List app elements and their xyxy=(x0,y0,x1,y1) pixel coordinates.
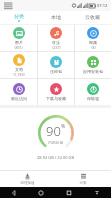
staticText: 07:12 xyxy=(97,3,108,8)
staticText: (8) xyxy=(91,45,96,50)
staticText: 分类 xyxy=(14,13,24,19)
button[interactable]: Hide keyboard xyxy=(83,187,111,198)
staticText: (891) xyxy=(14,45,23,50)
button[interactable]: 文档 xyxy=(0,52,37,78)
staticText: 下载与收藏 xyxy=(46,96,66,101)
staticText: 文档 xyxy=(15,67,23,72)
button[interactable]: Home xyxy=(27,187,55,198)
staticText: 内部存储 xyxy=(48,140,64,145)
button[interactable]: 保险箱 xyxy=(75,79,111,105)
button[interactable]: 分类 xyxy=(55,171,111,187)
staticText: 28.92 GB / 32.00 GB xyxy=(37,155,75,160)
button[interactable]: 最近访问 xyxy=(0,79,37,105)
staticText: 压缩包 xyxy=(50,69,62,74)
button[interactable]: 本地 xyxy=(37,11,74,24)
staticText: 清理加速 xyxy=(20,181,35,186)
staticText: 云收藏 xyxy=(85,14,100,20)
staticText: 图片 xyxy=(15,40,23,45)
button[interactable]: Recents xyxy=(55,187,83,198)
button[interactable]: 下载与收藏 xyxy=(38,79,74,105)
button[interactable]: Back xyxy=(0,187,27,198)
button[interactable]: 清理加速 xyxy=(0,171,55,187)
staticText: (1,749) xyxy=(13,72,25,77)
button[interactable]: 云收藏 xyxy=(74,11,111,24)
button[interactable]: 图片 xyxy=(0,25,37,51)
staticText: (237) xyxy=(52,45,61,50)
button[interactable]: 压缩包 xyxy=(38,52,74,78)
staticText: 最近访问 xyxy=(11,96,27,101)
staticText: 视频 xyxy=(89,40,97,45)
staticText: 应用安装包 xyxy=(83,69,103,74)
staticText: 本地 xyxy=(51,14,61,20)
button[interactable]: 分类 xyxy=(0,11,37,24)
button[interactable]: 视频 xyxy=(75,25,111,51)
staticText: % xyxy=(61,123,66,130)
button[interactable]: 音乐 xyxy=(38,25,74,51)
staticText: 音乐 xyxy=(52,40,60,45)
button[interactable]: 应用安装包 xyxy=(75,52,111,78)
staticText: 90 xyxy=(46,122,61,140)
staticText: 分类 xyxy=(79,181,87,186)
staticText: 保险箱 xyxy=(87,96,99,101)
